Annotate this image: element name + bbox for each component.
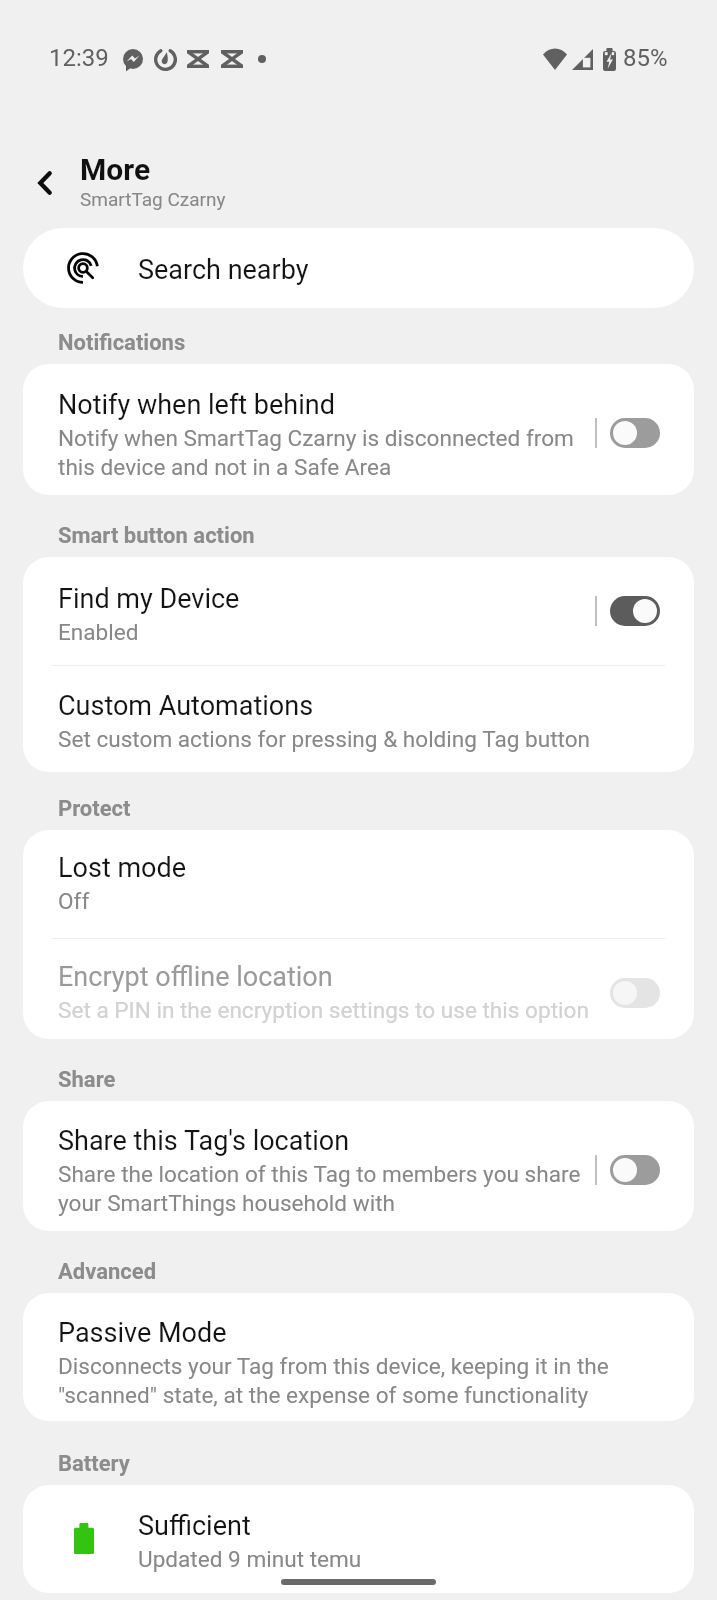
staticText: Sufficient xyxy=(138,1510,251,1542)
staticText: Share this Tag's location xyxy=(58,1125,350,1157)
staticText: Share xyxy=(58,1067,116,1093)
button[interactable]: Turn off xyxy=(610,596,660,626)
staticText: Off xyxy=(58,888,90,914)
staticText: Updated 9 minut temu xyxy=(138,1546,362,1572)
staticText: Notify when SmartTag Czarny is disconnec… xyxy=(58,425,590,480)
staticText: Passive Mode xyxy=(58,1317,227,1349)
staticText: Battery xyxy=(58,1451,130,1477)
staticText: Advanced xyxy=(58,1259,157,1285)
staticText: Protect xyxy=(58,796,131,822)
staticText: Find my Device xyxy=(58,583,240,615)
button[interactable]: Search nearby xyxy=(23,228,694,308)
staticText: Encrypt offline location xyxy=(58,961,333,993)
staticText: Notify when left behind xyxy=(58,389,335,421)
button[interactable]: Custom Automations xyxy=(23,666,694,772)
staticText: More xyxy=(80,152,151,187)
button[interactable]: Turn on xyxy=(610,1155,660,1185)
staticText: Disconnects your Tag from this device, k… xyxy=(58,1353,694,1408)
button[interactable]: Encrypt offline location xyxy=(23,939,694,1039)
button[interactable]: Lost mode xyxy=(23,830,694,938)
staticText: Enabled xyxy=(58,619,139,645)
staticText: Smart button action xyxy=(58,523,255,549)
button[interactable]: Notify when left behind xyxy=(23,364,694,495)
staticText: Lost mode xyxy=(58,852,187,884)
staticText: SmartTag Czarny xyxy=(80,188,226,210)
button[interactable]: Passive Mode xyxy=(23,1293,694,1421)
staticText: Set custom actions for pressing & holdin… xyxy=(58,726,591,752)
staticText: Share the location of this Tag to member… xyxy=(58,1161,590,1216)
button[interactable]: Turn on xyxy=(610,978,660,1008)
staticText: Custom Automations xyxy=(58,690,314,722)
button[interactable]: Share this Tag's location xyxy=(23,1101,694,1231)
button[interactable]: Find my Device xyxy=(23,557,694,665)
button[interactable]: Sufficient xyxy=(23,1485,694,1593)
staticText: Notifications xyxy=(58,330,186,356)
staticText: 12:39 xyxy=(49,44,109,72)
button[interactable]: Turn on xyxy=(610,418,660,448)
staticText: Set a PIN in the encryption settings to … xyxy=(58,997,589,1023)
staticText: 85% xyxy=(623,44,668,72)
button[interactable]: Back xyxy=(22,160,67,205)
staticText: Search nearby xyxy=(138,254,309,286)
